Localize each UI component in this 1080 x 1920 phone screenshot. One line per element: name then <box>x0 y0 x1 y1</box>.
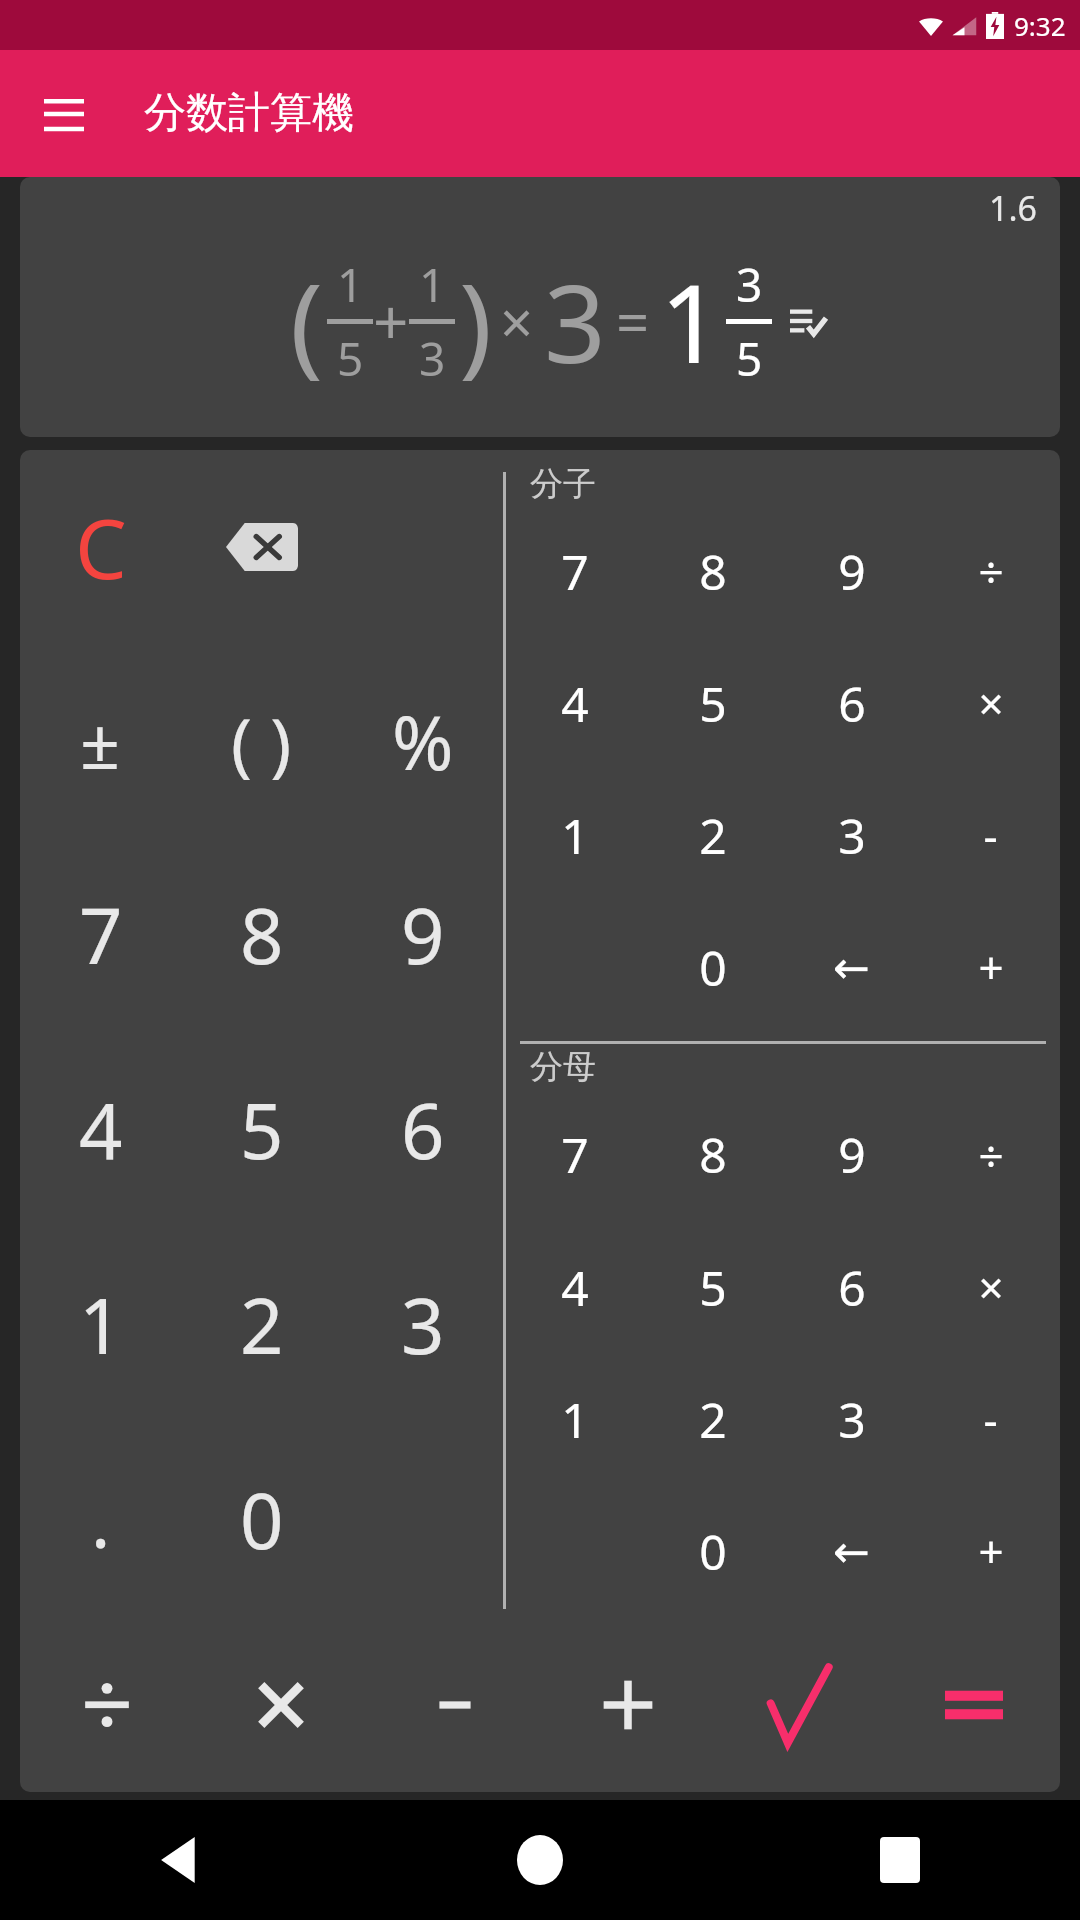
button[interactable]: 6 <box>782 1221 921 1353</box>
button[interactable]: - <box>921 1353 1060 1485</box>
button[interactable]: 0 <box>644 1485 782 1617</box>
button[interactable]: Multiply <box>194 1617 368 1792</box>
button[interactable]: Open navigation menu <box>36 86 92 142</box>
button[interactable]: 3 <box>342 1227 503 1422</box>
staticText: 1 <box>561 1387 589 1452</box>
staticText: 6 <box>401 1078 445 1182</box>
button[interactable]: + <box>921 901 1060 1033</box>
staticText: 2 <box>240 1273 284 1377</box>
staticText: 7 <box>79 883 123 987</box>
button[interactable]: Minus <box>368 1617 541 1792</box>
button[interactable]: 3 <box>782 1353 921 1485</box>
button[interactable]: 9 <box>782 505 921 637</box>
staticText: 8 <box>699 1122 727 1187</box>
button[interactable]: 5 <box>644 1221 782 1353</box>
staticText: ÷ <box>978 541 1004 601</box>
staticText: 1 <box>337 253 364 316</box>
staticText: 1.6 <box>989 185 1038 231</box>
button[interactable]: 7 <box>506 505 644 637</box>
button[interactable]: 4 <box>506 637 644 769</box>
button[interactable]: 5 <box>181 1032 342 1227</box>
button[interactable]: ÷ <box>921 505 1060 637</box>
button[interactable]: ← <box>782 1485 921 1617</box>
button[interactable]: 7 <box>506 1088 644 1221</box>
staticText: 6 <box>838 1255 866 1320</box>
button[interactable]: % <box>342 644 503 838</box>
staticText: 4 <box>79 1078 123 1182</box>
staticText: 4 <box>561 671 589 736</box>
button[interactable]: - <box>921 769 1060 901</box>
button[interactable]: 1.6 <box>20 177 1060 437</box>
button[interactable]: × <box>921 637 1060 769</box>
button[interactable]: Recent apps <box>720 1800 1080 1920</box>
button[interactable]: 1 <box>506 1353 644 1485</box>
button[interactable]: ÷ <box>921 1088 1060 1221</box>
button[interactable]: 1 <box>506 769 644 901</box>
button[interactable]: + <box>921 1485 1060 1617</box>
button[interactable]: 3 <box>782 769 921 901</box>
staticText: - <box>983 1389 998 1449</box>
button[interactable]: Square root <box>714 1617 887 1792</box>
staticText: 8 <box>699 539 727 604</box>
staticText: 0 <box>240 1468 284 1572</box>
staticText: 9:32 <box>1014 8 1066 43</box>
button[interactable]: 6 <box>342 1032 503 1227</box>
button[interactable]: C <box>20 450 181 644</box>
staticText: = <box>616 282 650 361</box>
staticText: 1 <box>660 248 722 395</box>
staticText: 3 <box>838 1387 866 1452</box>
button[interactable]: 2 <box>644 1353 782 1485</box>
button[interactable]: History <box>786 299 830 343</box>
staticText: + <box>373 279 409 363</box>
button[interactable]: 4 <box>20 1032 181 1227</box>
staticText: + <box>978 1521 1004 1581</box>
staticText: ± <box>80 694 121 789</box>
button[interactable]: 0 <box>181 1422 342 1617</box>
button[interactable]: Back <box>0 1800 360 1920</box>
button[interactable]: 8 <box>644 505 782 637</box>
button[interactable]: ± <box>20 644 181 838</box>
staticText: ( <box>290 246 323 396</box>
button[interactable]: 7 <box>20 838 181 1032</box>
button[interactable]: Home <box>360 1800 720 1920</box>
button[interactable]: 6 <box>782 637 921 769</box>
staticText: - <box>983 805 998 865</box>
staticText: 3 <box>736 253 763 316</box>
staticText: 5 <box>736 327 763 390</box>
staticText: × <box>978 673 1004 733</box>
button[interactable]: ( ) <box>181 644 342 838</box>
button[interactable]: 9 <box>342 838 503 1032</box>
button[interactable]: 2 <box>181 1227 342 1422</box>
staticText: 5 <box>337 327 364 390</box>
staticText: × <box>978 1257 1004 1317</box>
button[interactable]: Divide <box>20 1617 194 1792</box>
button[interactable]: 8 <box>181 838 342 1032</box>
button[interactable]: Equals <box>887 1617 1060 1792</box>
button[interactable]: ← <box>782 901 921 1033</box>
button[interactable]: 8 <box>644 1088 782 1221</box>
button[interactable]: 5 <box>644 637 782 769</box>
staticText: 3 <box>401 1273 445 1377</box>
button[interactable]: × <box>921 1221 1060 1353</box>
staticText: ← <box>833 1526 870 1577</box>
staticText: C <box>75 491 127 603</box>
staticText: 9 <box>401 883 445 987</box>
button[interactable]: Backspace <box>181 450 342 644</box>
button[interactable]: 9 <box>782 1088 921 1221</box>
button[interactable]: Plus <box>541 1617 714 1792</box>
staticText: ← <box>833 942 870 993</box>
staticText: 3 <box>419 327 446 390</box>
button[interactable]: 2 <box>644 769 782 901</box>
staticText: 1 <box>419 253 446 316</box>
button[interactable]: 4 <box>506 1221 644 1353</box>
staticText: 9 <box>838 1122 866 1187</box>
button[interactable]: 1 <box>20 1227 181 1422</box>
staticText: 3 <box>544 248 606 395</box>
staticText: . <box>91 1471 111 1569</box>
staticText: 1 <box>561 803 589 868</box>
staticText: 5 <box>240 1078 284 1182</box>
staticText: ) <box>459 246 492 396</box>
button[interactable]: . <box>20 1422 181 1617</box>
button[interactable]: 0 <box>644 901 782 1033</box>
staticText: 2 <box>699 803 727 868</box>
